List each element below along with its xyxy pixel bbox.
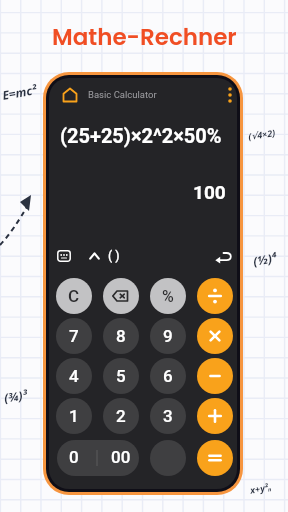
button[interactable] — [150, 440, 186, 476]
staticText: 100 — [193, 181, 226, 203]
button[interactable]: ( ) — [108, 249, 120, 263]
button[interactable]: 4 — [56, 358, 92, 394]
staticText: (√4×2) — [247, 126, 277, 142]
button[interactable]: 5 — [103, 358, 139, 394]
staticText: 00 — [111, 447, 131, 467]
button[interactable] — [89, 252, 100, 260]
button[interactable]: 0 — [57, 440, 139, 476]
button[interactable] — [197, 318, 233, 354]
button[interactable] — [197, 278, 233, 314]
button[interactable]: % — [150, 278, 186, 314]
button[interactable]: 2 — [103, 398, 139, 434]
staticText: 9 — [163, 326, 173, 346]
button[interactable]: 3 — [150, 398, 186, 434]
staticText: E=mc² — [1, 81, 38, 103]
button[interactable] — [197, 440, 233, 476]
staticText: (25+25)×2^2×50% — [60, 124, 222, 147]
button[interactable]: 6 — [150, 358, 186, 394]
button[interactable] — [197, 358, 233, 394]
button[interactable] — [62, 87, 78, 103]
staticText: 6 — [163, 366, 173, 386]
button[interactable]: 7 — [56, 318, 92, 354]
button[interactable]: C — [56, 278, 92, 314]
staticText: C — [68, 286, 80, 306]
staticText: (¾)³ — [3, 386, 29, 406]
button[interactable] — [197, 398, 233, 434]
button[interactable] — [215, 252, 232, 264]
staticText: 3 — [163, 406, 173, 426]
staticText: Mathe-Rechner — [52, 21, 237, 53]
staticText: 7 — [69, 326, 79, 346]
staticText: 1 — [69, 406, 79, 426]
staticText: 8 — [116, 326, 126, 346]
button[interactable] — [103, 278, 139, 314]
staticText: 2 — [116, 406, 126, 426]
staticText: 0 — [69, 447, 79, 467]
button[interactable]: 9 — [150, 318, 186, 354]
button[interactable]: 8 — [103, 318, 139, 354]
staticText: % — [162, 287, 174, 306]
staticText: Basic Calculator — [88, 89, 157, 100]
button[interactable]: 1 — [56, 398, 92, 434]
staticText: (½)⁴ — [252, 249, 278, 269]
button[interactable] — [57, 250, 71, 262]
staticText: x+y²ₙ — [249, 480, 273, 496]
button[interactable] — [224, 85, 236, 105]
staticText: 5 — [116, 366, 126, 386]
staticText: 4 — [69, 366, 79, 386]
